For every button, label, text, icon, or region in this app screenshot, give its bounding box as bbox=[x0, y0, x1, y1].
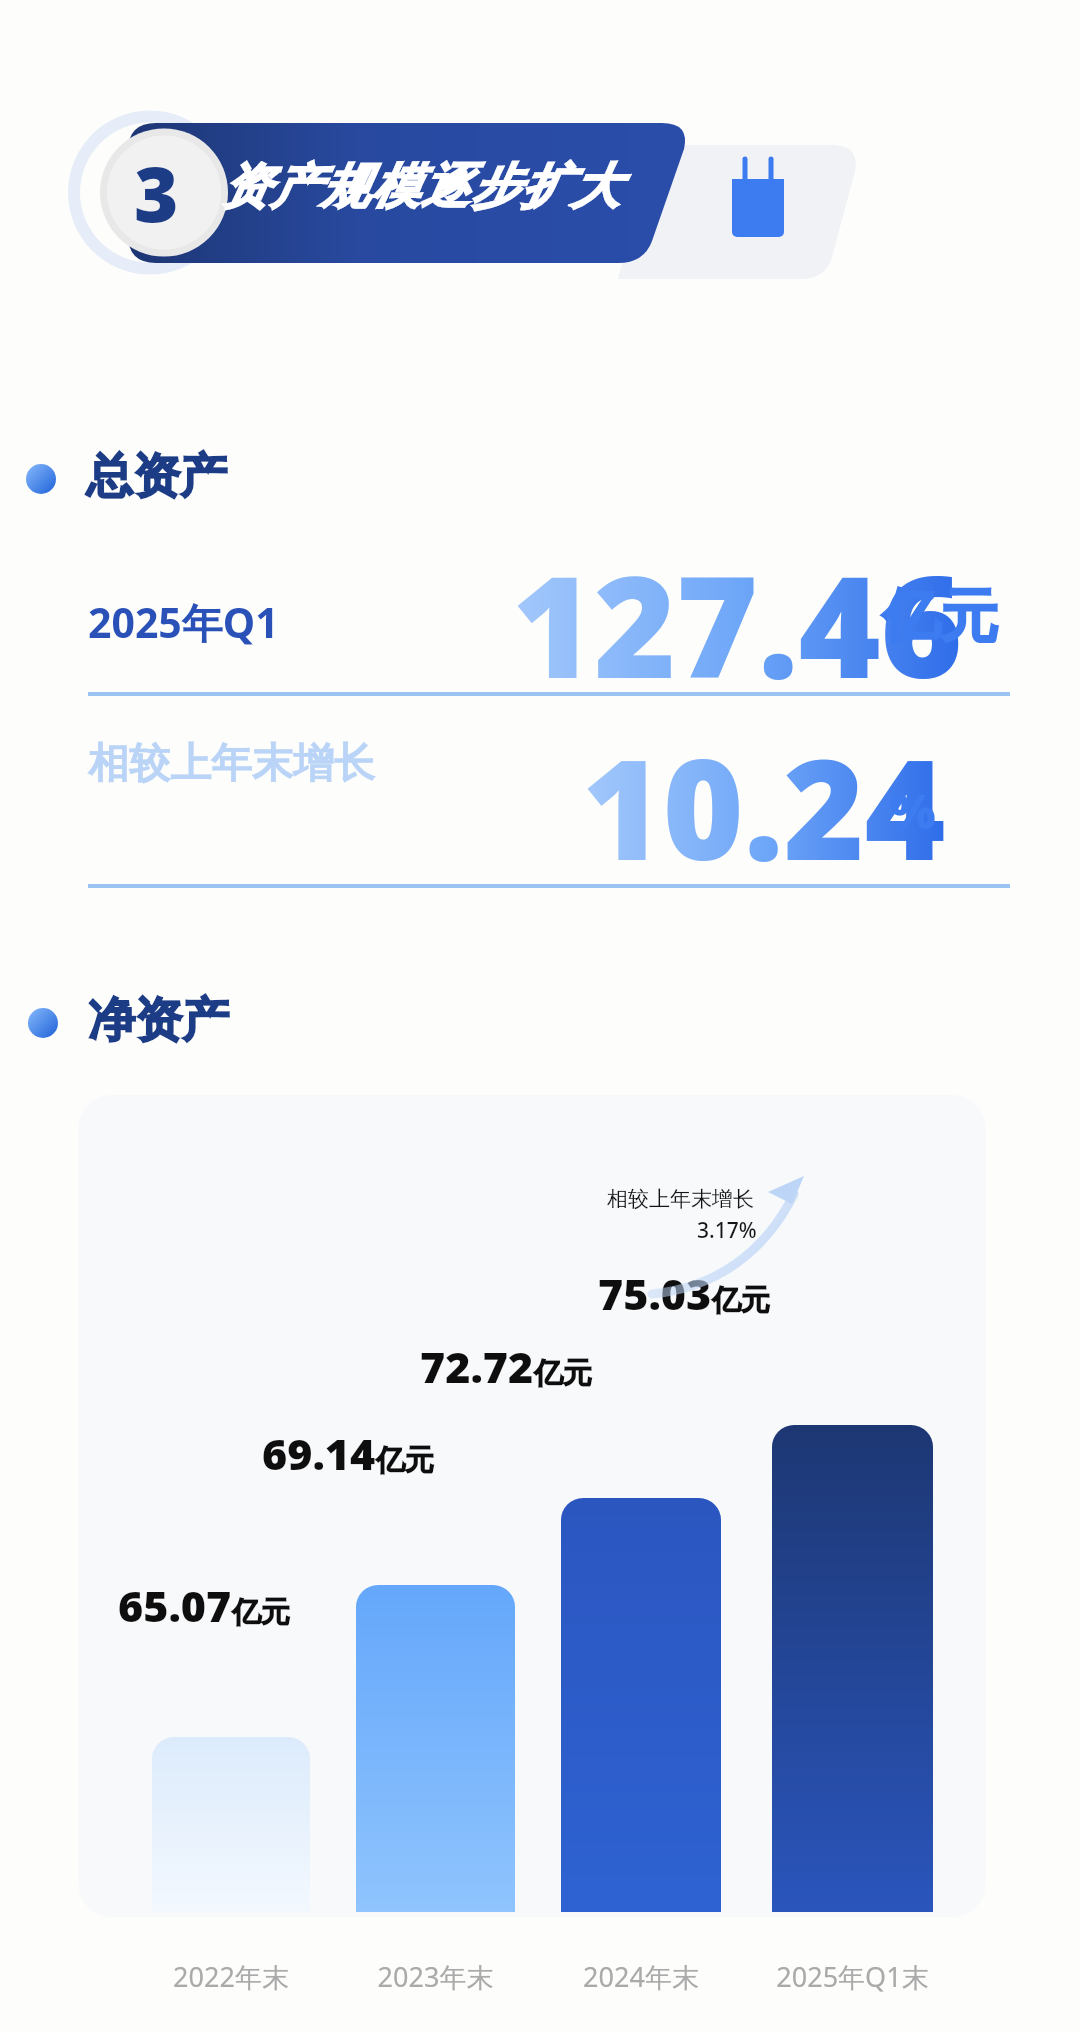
staticText: 资产规模逐步扩大 bbox=[220, 157, 620, 217]
button[interactable]: 总资产 bbox=[86, 447, 227, 506]
staticText: 2025年Q1末 bbox=[732, 1958, 973, 1995]
staticText: 3.17% bbox=[697, 1216, 757, 1245]
staticText: 3 bbox=[134, 141, 179, 245]
staticText: 亿元 bbox=[882, 580, 998, 653]
staticText: 亿元 bbox=[534, 1355, 592, 1392]
button[interactable]: 净资产 bbox=[88, 991, 229, 1050]
button[interactable]: 资产规模逐步扩大 bbox=[70, 105, 900, 280]
staticText: 亿元 bbox=[232, 1594, 290, 1631]
staticText: 2025年Q1 bbox=[88, 594, 279, 650]
staticText: 相较上年末增长 bbox=[88, 738, 375, 790]
staticText: 2024年末 bbox=[521, 1958, 761, 1995]
button[interactable] bbox=[78, 1095, 986, 1917]
staticText: 2022年末 bbox=[112, 1958, 350, 1995]
staticText: 75.03 bbox=[598, 1264, 712, 1323]
staticText: 127.46 bbox=[512, 528, 963, 719]
staticText: 2023年末 bbox=[316, 1958, 555, 1995]
staticText: 69.14 bbox=[262, 1424, 376, 1483]
staticText: 亿元 bbox=[376, 1442, 434, 1479]
staticText: 72.72 bbox=[420, 1337, 534, 1396]
staticText: 10.24 bbox=[582, 712, 946, 900]
staticText: 亿元 bbox=[712, 1282, 770, 1319]
staticText: % bbox=[890, 778, 936, 843]
staticText: 相较上年末增长 bbox=[607, 1186, 754, 1212]
staticText: 65.07 bbox=[118, 1576, 232, 1635]
